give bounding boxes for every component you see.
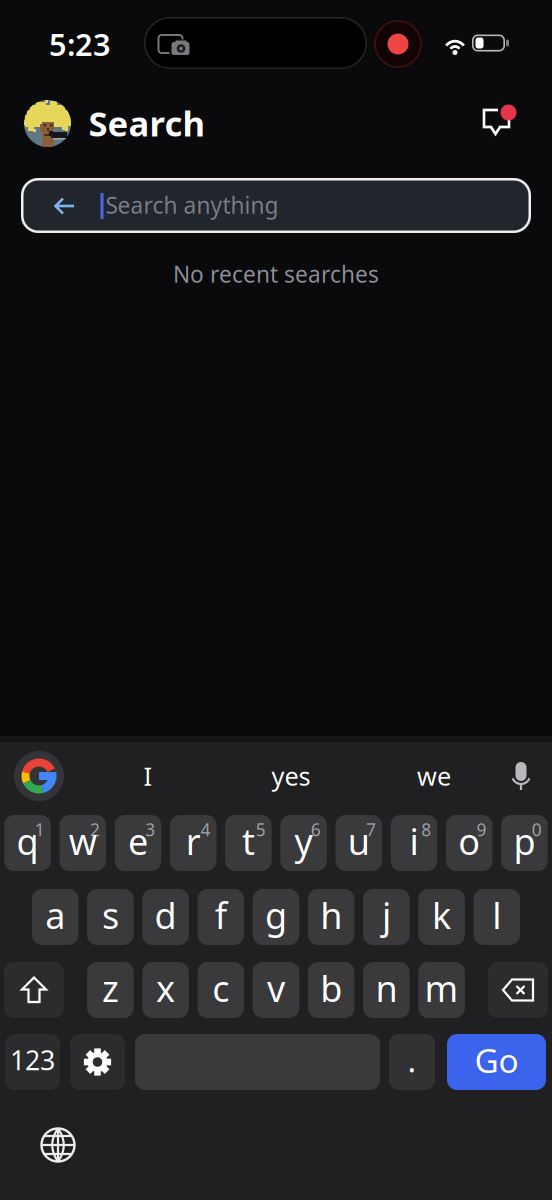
button[interactable]: 1 [4,815,51,871]
staticText: h [320,891,342,939]
staticText: q [17,817,39,865]
staticText: 7 [366,818,376,841]
button[interactable]: h [308,889,354,945]
button[interactable]: 123 [5,1034,60,1090]
button[interactable]: m [418,962,465,1018]
button[interactable]: v [253,962,299,1018]
button[interactable]: n [363,962,410,1018]
staticText: d [155,891,177,939]
staticText: 9 [476,818,486,841]
button[interactable]: s [87,889,134,945]
button[interactable]: Delete [488,962,548,1018]
button[interactable]: b [308,962,354,1018]
button[interactable]: Voice input [507,761,535,791]
button[interactable]: 8 [391,815,437,871]
button[interactable]: 0 [501,815,548,871]
button[interactable]: 2 [59,815,106,871]
staticText: y [295,817,313,865]
staticText: p [513,817,535,865]
staticText: n [375,964,397,1012]
staticText: yes [271,759,310,793]
staticText: l [492,891,501,939]
staticText: j [382,891,391,939]
staticText: b [320,964,342,1012]
button[interactable]: Keyboard settings [70,1034,125,1090]
button[interactable]: g [253,889,299,945]
button[interactable]: 9 [446,815,492,871]
button[interactable]: j [363,889,410,945]
staticText: Go [474,1038,518,1082]
staticText: 5 [256,818,266,841]
staticText: Search [88,100,205,146]
button[interactable]: x [142,962,189,1018]
staticText: 6 [311,818,321,841]
staticText: we [417,759,451,793]
staticText: a [45,891,65,939]
button[interactable]: Back [54,198,74,214]
button[interactable]: 6 [280,815,327,871]
staticText: x [156,964,175,1012]
button[interactable]: I [143,759,152,793]
button[interactable]: we [417,759,451,793]
staticText: w [69,817,97,865]
button[interactable]: 3 [115,815,161,871]
staticText: Search anything [105,190,278,220]
staticText: . [407,1039,416,1081]
button[interactable]: Messages [481,108,521,140]
button[interactable]: Shift [4,962,64,1018]
button[interactable]: Go [447,1034,546,1090]
button[interactable]: yes [271,759,310,793]
staticText: 4 [200,818,210,841]
staticText: 2 [90,818,100,841]
button[interactable]: 5 [225,815,272,871]
staticText: s [102,891,119,939]
button[interactable]: 7 [336,815,382,871]
staticText: t [242,817,255,865]
staticText: o [458,817,480,865]
staticText: z [102,964,119,1012]
staticText: I [143,759,152,793]
staticText: i [409,817,418,865]
button[interactable]: l [474,889,520,945]
staticText: r [186,817,201,865]
button[interactable]: Google search [14,751,64,801]
staticText: m [425,964,459,1012]
staticText: u [348,817,370,865]
staticText: g [265,891,287,939]
button[interactable]: k [418,889,465,945]
button[interactable]: 4 [170,815,216,871]
staticText: 8 [421,818,431,841]
staticText: k [432,891,451,939]
button[interactable]: Search anything [21,178,531,233]
staticText: 1 [35,818,45,841]
button[interactable]: f [198,889,244,945]
staticText: c [212,964,229,1012]
staticText: v [267,964,285,1012]
button[interactable]: . [389,1034,435,1090]
button[interactable]: c [198,962,244,1018]
staticText: 0 [532,818,542,841]
button[interactable]: Profile [24,100,71,147]
button[interactable]: Next keyboard [38,1125,78,1165]
staticText: 123 [10,1042,55,1078]
button[interactable]: z [87,962,134,1018]
staticText: 3 [145,818,155,841]
staticText: f [215,891,227,939]
button[interactable]: a [32,889,78,945]
button[interactable]: d [142,889,189,945]
staticText: No recent searches [173,259,379,289]
staticText: 5:23 [49,24,111,64]
staticText: e [128,817,148,865]
